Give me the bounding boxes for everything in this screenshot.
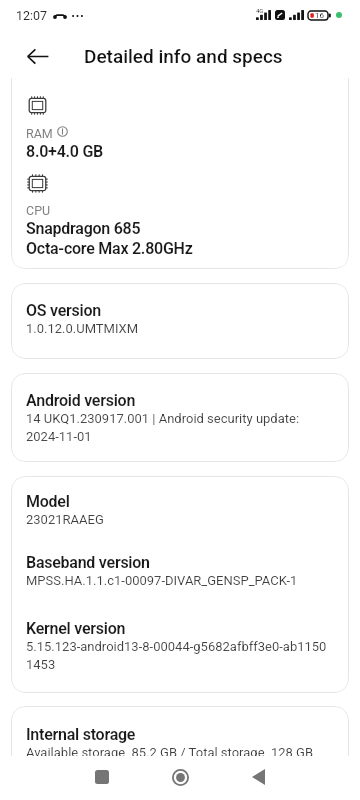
staticText: Kernel version bbox=[26, 619, 126, 638]
staticText: 23021RAAEG bbox=[26, 512, 104, 527]
button[interactable]: RAM bbox=[11, 78, 349, 269]
button[interactable]: Internal storage bbox=[11, 706, 349, 783]
staticText: 16 bbox=[315, 11, 324, 20]
staticText: Model bbox=[26, 492, 70, 511]
button[interactable]: Android version bbox=[11, 373, 349, 462]
staticText: Internal storage bbox=[26, 725, 136, 744]
staticText: 4G bbox=[256, 7, 264, 14]
staticText: Snapdragon 685 bbox=[26, 219, 141, 238]
staticText: Baseband version bbox=[26, 553, 150, 572]
staticText: 1.0.12.0.UMTMIXM bbox=[26, 321, 139, 336]
staticText: CPU bbox=[26, 203, 51, 218]
button[interactable]: Recents bbox=[82, 757, 122, 797]
staticText: 5.15.123-android13-8-00044-g5682afbff3e0… bbox=[26, 639, 327, 672]
button[interactable]: OS version bbox=[11, 283, 349, 359]
button[interactable]: Back bbox=[21, 39, 55, 73]
button[interactable]: Model bbox=[11, 476, 349, 693]
staticText: Octa-core Max 2.80GHz bbox=[26, 239, 193, 258]
staticText: 12:07 bbox=[16, 8, 48, 23]
staticText: 8.0+4.0 GB bbox=[26, 142, 103, 161]
staticText: RAM bbox=[26, 126, 53, 141]
button[interactable]: Back bbox=[238, 757, 278, 797]
staticText: OS version bbox=[26, 301, 101, 320]
staticText: 14 UKQ1.230917.001 | Android security up… bbox=[26, 411, 300, 444]
staticText: Android version bbox=[26, 391, 136, 410]
button[interactable]: Home bbox=[160, 757, 200, 797]
staticText: MPSS.HA.1.1.c1-00097-DIVAR_GENSP_PACK-1 bbox=[26, 573, 298, 588]
staticText: Detailed info and specs bbox=[84, 45, 283, 67]
staticText: Available storage 85.2 GB / Total storag… bbox=[26, 745, 314, 760]
